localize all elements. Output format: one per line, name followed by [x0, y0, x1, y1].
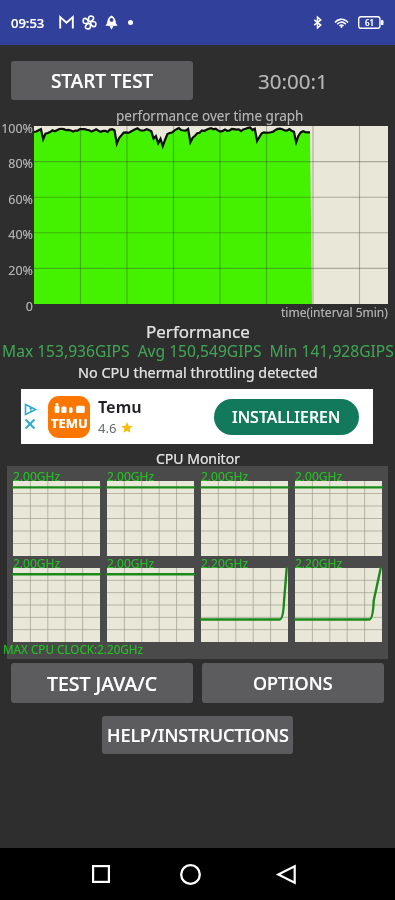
staticText: CPU Monitor	[156, 449, 240, 468]
button[interactable]: START TEST	[11, 61, 193, 100]
staticText: INSTALLIEREN	[232, 406, 341, 428]
staticText: 4.6	[98, 419, 117, 437]
staticText: 40%	[8, 226, 33, 240]
staticText: performance over time graph	[116, 107, 304, 125]
staticText: 61	[365, 17, 375, 28]
staticText: time(interval 5min)	[281, 304, 388, 320]
staticText: No CPU thermal throttling detected	[78, 363, 318, 383]
button[interactable]: TEST JAVA/C	[11, 663, 193, 703]
button[interactable]: Home	[142, 848, 238, 900]
staticText: 2.00GHz	[201, 468, 249, 484]
button[interactable]: TEMU	[21, 389, 373, 444]
staticText: START TEST	[51, 68, 154, 94]
staticText: 2.00GHz	[107, 555, 155, 571]
staticText: TEMU	[51, 414, 88, 432]
staticText: 80%	[8, 155, 33, 169]
staticText: HELP/INSTRUCTIONS	[107, 723, 289, 748]
staticText: 2.00GHz	[107, 468, 155, 484]
staticText: 30:00:1	[258, 67, 328, 95]
staticText: Performance	[146, 320, 250, 343]
staticText: 100%	[1, 120, 33, 134]
staticText: OPTIONS	[253, 671, 333, 696]
staticText: Temu	[98, 396, 142, 418]
staticText: MAX CPU CLOCK:2.20GHz	[3, 641, 144, 657]
button[interactable]: OPTIONS	[202, 663, 384, 703]
button[interactable]: INSTALLIEREN	[214, 399, 359, 435]
button[interactable]: Back	[238, 848, 334, 900]
staticText: Max 153,936GIPS Avg 150,549GIPS Min 141,…	[2, 340, 394, 361]
button[interactable]: Recent apps	[60, 848, 142, 900]
staticText: 20%	[8, 262, 33, 276]
staticText: 2.00GHz	[13, 555, 61, 571]
staticText: 2.20GHz	[295, 555, 343, 571]
staticText: 09:53	[11, 14, 45, 32]
staticText: TEST JAVA/C	[47, 670, 158, 697]
staticText: 2.20GHz	[201, 555, 249, 571]
staticText: 0	[25, 298, 33, 312]
staticText: 2.00GHz	[295, 468, 343, 484]
staticText: 2.00GHz	[13, 468, 61, 484]
staticText: 60%	[8, 191, 33, 205]
button[interactable]: HELP/INSTRUCTIONS	[102, 716, 293, 754]
